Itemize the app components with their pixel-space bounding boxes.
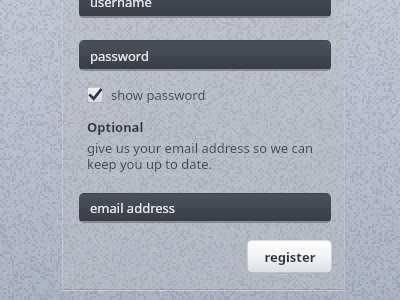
staticText: email address [90, 199, 176, 217]
staticText: give us your email address so we can kee… [87, 139, 313, 172]
staticText: register [264, 248, 316, 266]
staticText: username [90, 0, 152, 11]
button[interactable]: email address [79, 193, 331, 223]
button[interactable]: username [79, 0, 331, 18]
staticText: password [90, 47, 149, 65]
button[interactable]: show password [85, 84, 208, 106]
staticText: show password [111, 86, 206, 104]
button[interactable]: password [79, 40, 331, 71]
staticText: Optional [87, 118, 144, 136]
button[interactable]: register [247, 240, 332, 273]
